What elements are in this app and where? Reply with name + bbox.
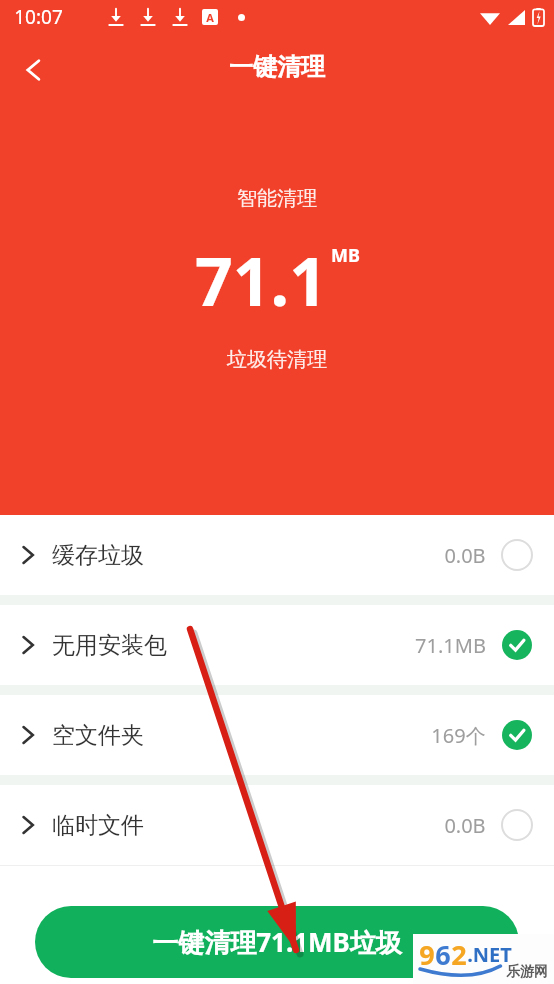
button[interactable]: 返回 bbox=[8, 44, 60, 96]
staticText: 缓存垃圾 bbox=[52, 541, 144, 570]
staticText: A bbox=[206, 10, 214, 25]
staticText: 169个 bbox=[431, 722, 486, 749]
staticText: 71.1 bbox=[195, 235, 327, 325]
staticText: 临时文件 bbox=[52, 811, 144, 840]
staticText: 0.0B bbox=[444, 542, 486, 569]
staticText: 乐游网 bbox=[506, 963, 548, 981]
staticText: 2 bbox=[451, 936, 467, 973]
button[interactable]: 无用安装包 bbox=[0, 605, 554, 685]
staticText: 一键清理 bbox=[229, 52, 325, 82]
staticText: .NET bbox=[467, 941, 512, 968]
staticText: 6 bbox=[435, 936, 451, 973]
button[interactable]: 空文件夹 bbox=[0, 695, 554, 775]
button[interactable]: 缓存垃圾 bbox=[0, 515, 554, 595]
staticText: 垃圾待清理 bbox=[227, 347, 327, 372]
button[interactable]: 临时文件 bbox=[0, 785, 554, 865]
button[interactable]: 已选中 无用安装包 bbox=[500, 628, 534, 662]
staticText: 10:07 bbox=[14, 4, 63, 30]
button[interactable]: 未选中 缓存垃圾 bbox=[500, 538, 534, 572]
staticText: 一键清理71.1MB垃圾 bbox=[152, 924, 402, 960]
staticText: 71.1MB bbox=[415, 632, 486, 659]
staticText: 空文件夹 bbox=[52, 721, 144, 750]
staticText: 9 bbox=[419, 936, 435, 973]
button[interactable]: 已选中 空文件夹 bbox=[500, 718, 534, 752]
staticText: 0.0B bbox=[444, 812, 486, 839]
staticText: MB bbox=[331, 243, 360, 268]
button[interactable]: 一键清理71.1MB垃圾 bbox=[35, 906, 519, 978]
staticText: 智能清理 bbox=[237, 186, 317, 211]
button[interactable]: 未选中 临时文件 bbox=[500, 808, 534, 842]
staticText: 无用安装包 bbox=[52, 631, 167, 660]
